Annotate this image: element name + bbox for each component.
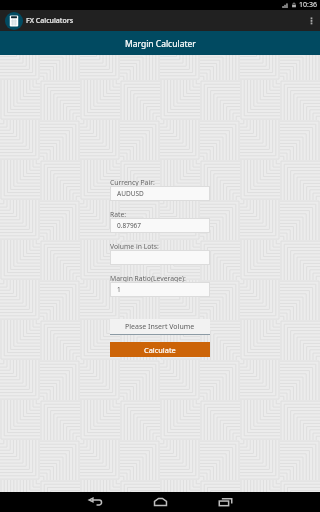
button[interactable]: Home: [128, 492, 193, 512]
button[interactable]: Calculate: [110, 342, 210, 357]
staticText: Volume in Lots:: [110, 242, 159, 250]
staticText: 10:36: [299, 0, 317, 10]
staticText: Currency Pair:: [110, 178, 155, 186]
button[interactable]: Recents: [193, 492, 258, 512]
staticText: Rate:: [110, 210, 127, 218]
staticText: AUDUSD: [117, 189, 144, 198]
button[interactable]: More options: [302, 10, 320, 31]
staticText: Please Insert Volume: [125, 322, 195, 332]
staticText: Margin Ratio(Leverage):: [110, 274, 186, 282]
staticText: Calculate: [144, 345, 176, 355]
staticText: FX Calculators: [26, 16, 74, 26]
button[interactable]: [110, 250, 210, 265]
button[interactable]: 1: [110, 282, 210, 297]
button[interactable]: AUDUSD: [110, 186, 210, 201]
staticText: 0.87967: [117, 221, 142, 230]
button[interactable]: Please Insert Volume: [110, 319, 210, 335]
staticText: 1: [117, 285, 121, 294]
button[interactable]: Back: [63, 492, 128, 512]
staticText: Margin Calculater: [125, 38, 196, 50]
button[interactable]: 0.87967: [110, 218, 210, 233]
